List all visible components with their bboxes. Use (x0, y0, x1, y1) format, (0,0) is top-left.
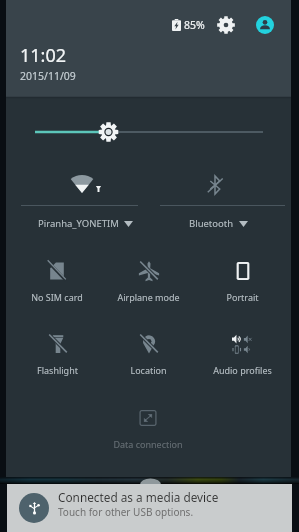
staticText: Location (130, 364, 167, 376)
button[interactable]: Brightness (6, 110, 291, 154)
button[interactable]: Flashlight (11, 321, 103, 391)
staticText: Connected as a media device (58, 489, 219, 505)
staticText: Flashlight (37, 364, 78, 376)
button[interactable]: Airplane mode (102, 248, 194, 318)
button[interactable]: Location (102, 321, 194, 391)
button[interactable]: Portrait (196, 248, 288, 318)
button[interactable]: User profile (252, 12, 277, 37)
button[interactable]: Connected as a media device (7, 484, 292, 532)
staticText: Touch for other USB options. (58, 505, 194, 519)
button[interactable]: No SIM card (11, 248, 103, 318)
staticText: Bluetooth (189, 217, 234, 230)
staticText: Audio profiles (213, 364, 272, 376)
button[interactable] (148, 165, 291, 237)
staticText: 85% (184, 18, 205, 32)
button[interactable]: Audio profiles (196, 321, 288, 391)
button[interactable]: Settings (213, 12, 238, 37)
staticText: No SIM card (31, 291, 83, 303)
button[interactable] (6, 165, 148, 237)
staticText: Piranha_YONETIM (38, 217, 119, 230)
staticText: Portrait (226, 291, 259, 303)
button[interactable]: Data connection (102, 395, 194, 465)
staticText: 2015/11/09 (20, 69, 76, 83)
staticText: Data connection (113, 438, 183, 450)
button[interactable]: 11:02 (20, 43, 76, 83)
staticText: 11:02 (20, 43, 67, 68)
staticText: Airplane mode (117, 291, 180, 303)
